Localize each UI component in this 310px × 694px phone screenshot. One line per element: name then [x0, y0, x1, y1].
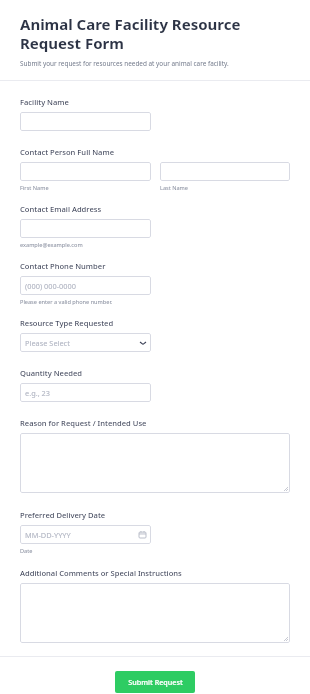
staticText: Quantity Needed [20, 368, 83, 378]
staticText: MM-DD-YYYY [25, 530, 71, 540]
button[interactable]: Submit Request [115, 671, 195, 693]
staticText: Contact Phone Number [20, 261, 106, 271]
button[interactable]: Contact Phone Number [20, 276, 151, 295]
staticText: Date [20, 547, 33, 555]
staticText: Animal Care Facility Resource Request Fo… [20, 14, 285, 53]
button[interactable]: Quantity Needed [20, 383, 151, 402]
staticText: Last Name [160, 184, 188, 192]
staticText: Submit your request for resources needed… [20, 59, 229, 68]
staticText: Additional Comments or Special Instructi… [20, 568, 182, 578]
staticText: Facility Name [20, 97, 69, 107]
button[interactable]: Last Name [160, 162, 290, 181]
button[interactable]: Resource Type Requested [20, 333, 151, 352]
button[interactable]: Additional Comments [20, 583, 290, 643]
staticText: e.g., 23 [25, 388, 51, 398]
staticText: Reason for Request / Intended Use [20, 418, 147, 428]
button[interactable]: First Name [20, 162, 151, 181]
staticText: (000) 000-0000 [25, 281, 77, 291]
staticText: Please Select [25, 338, 70, 348]
staticText: Resource Type Requested [20, 318, 114, 328]
staticText: Submit Request [128, 677, 183, 687]
staticText: Contact Email Address [20, 204, 102, 214]
staticText: Contact Person Full Name [20, 147, 114, 157]
button[interactable]: Reason for Request [20, 433, 290, 493]
button[interactable]: Facility Name [20, 112, 151, 131]
staticText: Please enter a valid phone number. [20, 298, 113, 306]
staticText: Preferred Delivery Date [20, 510, 106, 520]
button[interactable]: Contact Email Address [20, 219, 151, 238]
staticText: example@example.com [20, 241, 83, 249]
staticText: First Name [20, 184, 49, 192]
button[interactable]: Preferred Delivery Date [20, 525, 151, 544]
